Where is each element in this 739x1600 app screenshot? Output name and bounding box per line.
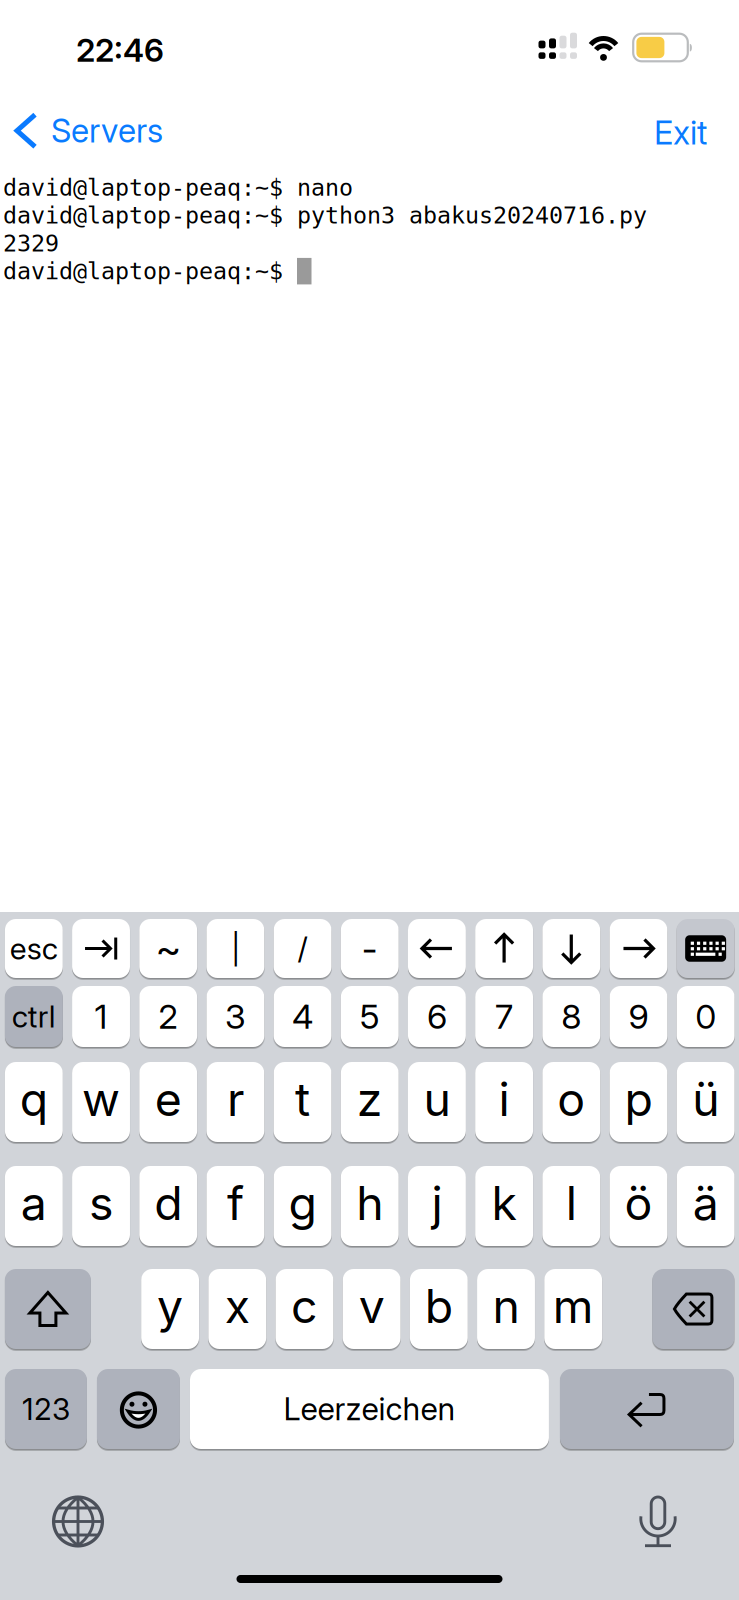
button[interactable]: ~ xyxy=(139,919,197,978)
staticText: a xyxy=(21,1175,47,1231)
staticText: david@laptop-peaq:~$ nano xyxy=(3,174,353,201)
staticText: j xyxy=(431,1175,442,1231)
button[interactable]: Delete xyxy=(652,1269,734,1349)
staticText: 1 xyxy=(94,996,107,1037)
button[interactable]: h xyxy=(341,1166,399,1246)
button[interactable]: Leerzeichen xyxy=(190,1369,549,1449)
button[interactable]: m xyxy=(544,1269,602,1349)
staticText: Servers xyxy=(51,111,163,150)
staticText: 7 xyxy=(495,996,513,1037)
button[interactable]: 2 xyxy=(139,986,197,1047)
staticText: q xyxy=(20,1071,48,1127)
button[interactable]: Right arrow xyxy=(609,919,667,978)
button[interactable]: l xyxy=(542,1166,600,1246)
staticText: david@laptop-peaq:~$ xyxy=(3,258,297,285)
button[interactable]: a xyxy=(5,1166,63,1246)
button[interactable]: n xyxy=(477,1269,535,1349)
button[interactable]: 3 xyxy=(206,986,264,1047)
button[interactable]: Dictation xyxy=(638,1493,678,1549)
staticText: b xyxy=(425,1278,453,1334)
button[interactable]: o xyxy=(542,1062,600,1142)
button[interactable]: v xyxy=(343,1269,401,1349)
button[interactable]: Next keyboard xyxy=(52,1495,104,1547)
button[interactable]: r xyxy=(206,1062,264,1142)
button[interactable]: 7 xyxy=(475,986,533,1047)
button[interactable]: 9 xyxy=(609,986,667,1047)
staticText: / xyxy=(298,930,308,967)
button[interactable]: 8 xyxy=(542,986,600,1047)
button[interactable]: 5 xyxy=(341,986,399,1047)
button[interactable]: z xyxy=(341,1062,399,1142)
staticText: e xyxy=(155,1071,182,1127)
button[interactable]: - xyxy=(341,919,399,978)
button[interactable]: Exit xyxy=(654,113,707,152)
staticText: ü xyxy=(692,1071,719,1127)
button[interactable]: Servers xyxy=(13,111,163,150)
staticText: u xyxy=(423,1071,450,1127)
button[interactable]: p xyxy=(609,1062,667,1142)
staticText: s xyxy=(89,1175,113,1231)
button[interactable]: Up arrow xyxy=(475,919,533,978)
button[interactable]: Control xyxy=(5,986,63,1047)
staticText: 6 xyxy=(427,996,447,1037)
button[interactable]: ö xyxy=(609,1166,667,1246)
button[interactable]: s xyxy=(72,1166,130,1246)
staticText: f xyxy=(227,1175,244,1231)
button[interactable]: Return xyxy=(560,1369,734,1449)
staticText: d xyxy=(154,1175,182,1231)
button[interactable]: / xyxy=(274,919,331,978)
staticText: | xyxy=(231,930,240,967)
staticText: ~ xyxy=(156,924,181,973)
button[interactable]: q xyxy=(5,1062,63,1142)
button[interactable]: i xyxy=(475,1062,533,1142)
staticText: esc xyxy=(10,930,58,967)
staticText: p xyxy=(624,1071,652,1127)
button[interactable]: w xyxy=(72,1062,130,1142)
button[interactable]: Dismiss keyboard xyxy=(677,919,735,978)
staticText: x xyxy=(225,1278,250,1334)
button[interactable]: j xyxy=(408,1166,466,1246)
button[interactable]: Shift xyxy=(5,1269,91,1349)
staticText: h xyxy=(356,1175,383,1231)
button[interactable]: y xyxy=(141,1269,199,1349)
staticText: Leerzeichen xyxy=(283,1390,455,1428)
button[interactable]: c xyxy=(275,1269,333,1349)
button[interactable]: e xyxy=(139,1062,197,1142)
button[interactable]: ä xyxy=(677,1166,735,1246)
button[interactable]: Left arrow xyxy=(408,919,466,978)
button[interactable]: | xyxy=(206,919,264,978)
staticText: r xyxy=(227,1071,244,1127)
staticText: t xyxy=(295,1071,310,1127)
staticText: o xyxy=(557,1071,585,1127)
button[interactable]: k xyxy=(475,1166,533,1246)
button[interactable]: b xyxy=(410,1269,468,1349)
staticText: c xyxy=(291,1278,318,1334)
staticText: k xyxy=(492,1175,517,1231)
staticText: 4 xyxy=(292,996,313,1037)
button[interactable]: Numbers xyxy=(5,1369,87,1449)
staticText: - xyxy=(362,927,378,970)
staticText: 123 xyxy=(22,1391,70,1427)
staticText: david@laptop-peaq:~$ python3 abakus20240… xyxy=(3,202,647,229)
button[interactable]: f xyxy=(206,1166,264,1246)
staticText: w xyxy=(82,1071,120,1127)
staticText: ä xyxy=(693,1175,719,1231)
button[interactable]: 4 xyxy=(274,986,331,1047)
button[interactable]: Tab xyxy=(72,919,130,978)
button[interactable]: u xyxy=(408,1062,466,1142)
button[interactable]: x xyxy=(208,1269,266,1349)
staticText: 2329 xyxy=(3,230,59,257)
button[interactable]: d xyxy=(139,1166,197,1246)
staticText: 5 xyxy=(360,996,380,1037)
staticText: y xyxy=(157,1278,183,1334)
button[interactable]: g xyxy=(274,1166,331,1246)
button[interactable]: 0 xyxy=(677,986,735,1047)
button[interactable]: t xyxy=(274,1062,331,1142)
button[interactable]: 1 xyxy=(72,986,130,1047)
button[interactable]: ü xyxy=(677,1062,735,1142)
staticText: 3 xyxy=(225,996,246,1037)
button[interactable]: Emoji xyxy=(97,1369,180,1449)
button[interactable]: Escape xyxy=(5,919,63,978)
button[interactable]: 6 xyxy=(408,986,466,1047)
button[interactable]: Down arrow xyxy=(542,919,600,978)
